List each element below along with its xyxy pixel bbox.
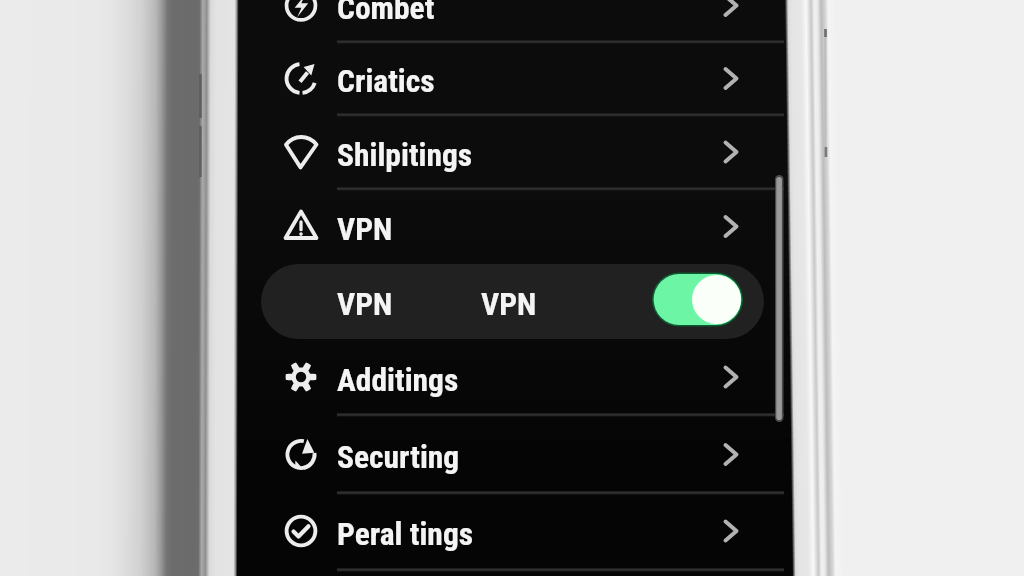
staticText: VPN bbox=[337, 211, 393, 248]
staticText: Peral tings bbox=[337, 516, 474, 553]
staticText: Criatics bbox=[337, 63, 435, 100]
button[interactable]: Securting bbox=[237, 416, 790, 493]
button[interactable]: VPN on bbox=[652, 264, 747, 339]
button[interactable]: Combet bbox=[237, 0, 790, 42]
staticText: Additings bbox=[337, 362, 459, 399]
button[interactable]: Additings bbox=[237, 339, 790, 415]
button[interactable]: VPN bbox=[237, 189, 790, 264]
staticText: VPN bbox=[481, 286, 537, 323]
staticText: Securting bbox=[337, 439, 460, 476]
button[interactable]: Criatics bbox=[237, 42, 790, 115]
staticText: VPN bbox=[337, 286, 393, 323]
button[interactable]: VPN bbox=[261, 264, 764, 339]
staticText: Shilpitings bbox=[337, 137, 473, 174]
button[interactable]: Shilpitings bbox=[237, 115, 790, 189]
button[interactable]: Peral tings bbox=[237, 492, 790, 570]
staticText: Combet bbox=[337, 0, 435, 27]
